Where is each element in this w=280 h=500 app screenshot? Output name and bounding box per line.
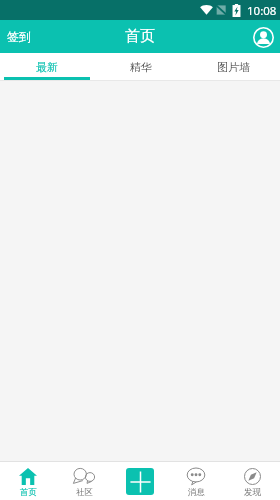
button[interactable]: 社区 (56, 462, 112, 500)
staticText: 发现 (244, 487, 261, 498)
button[interactable]: Profile (252, 26, 274, 48)
staticText: 最新 (36, 60, 58, 74)
staticText: 10:08 (247, 3, 277, 19)
button[interactable]: 图片墙 (187, 53, 280, 80)
staticText: 首页 (125, 27, 155, 46)
staticText: 首页 (20, 487, 37, 498)
staticText: 精华 (130, 60, 152, 74)
button[interactable]: 精华 (94, 53, 187, 80)
staticText: 消息 (188, 487, 205, 498)
button[interactable]: 首页 (0, 462, 56, 500)
button[interactable]: Add post (126, 468, 154, 495)
button[interactable]: 消息 (168, 462, 224, 500)
button[interactable]: 最新 (0, 53, 94, 80)
staticText: 图片墙 (217, 60, 250, 74)
button[interactable]: 发现 (224, 462, 280, 500)
staticText: 签到 (7, 29, 31, 44)
button[interactable]: 签到 (0, 20, 38, 53)
staticText: 社区 (76, 487, 93, 498)
